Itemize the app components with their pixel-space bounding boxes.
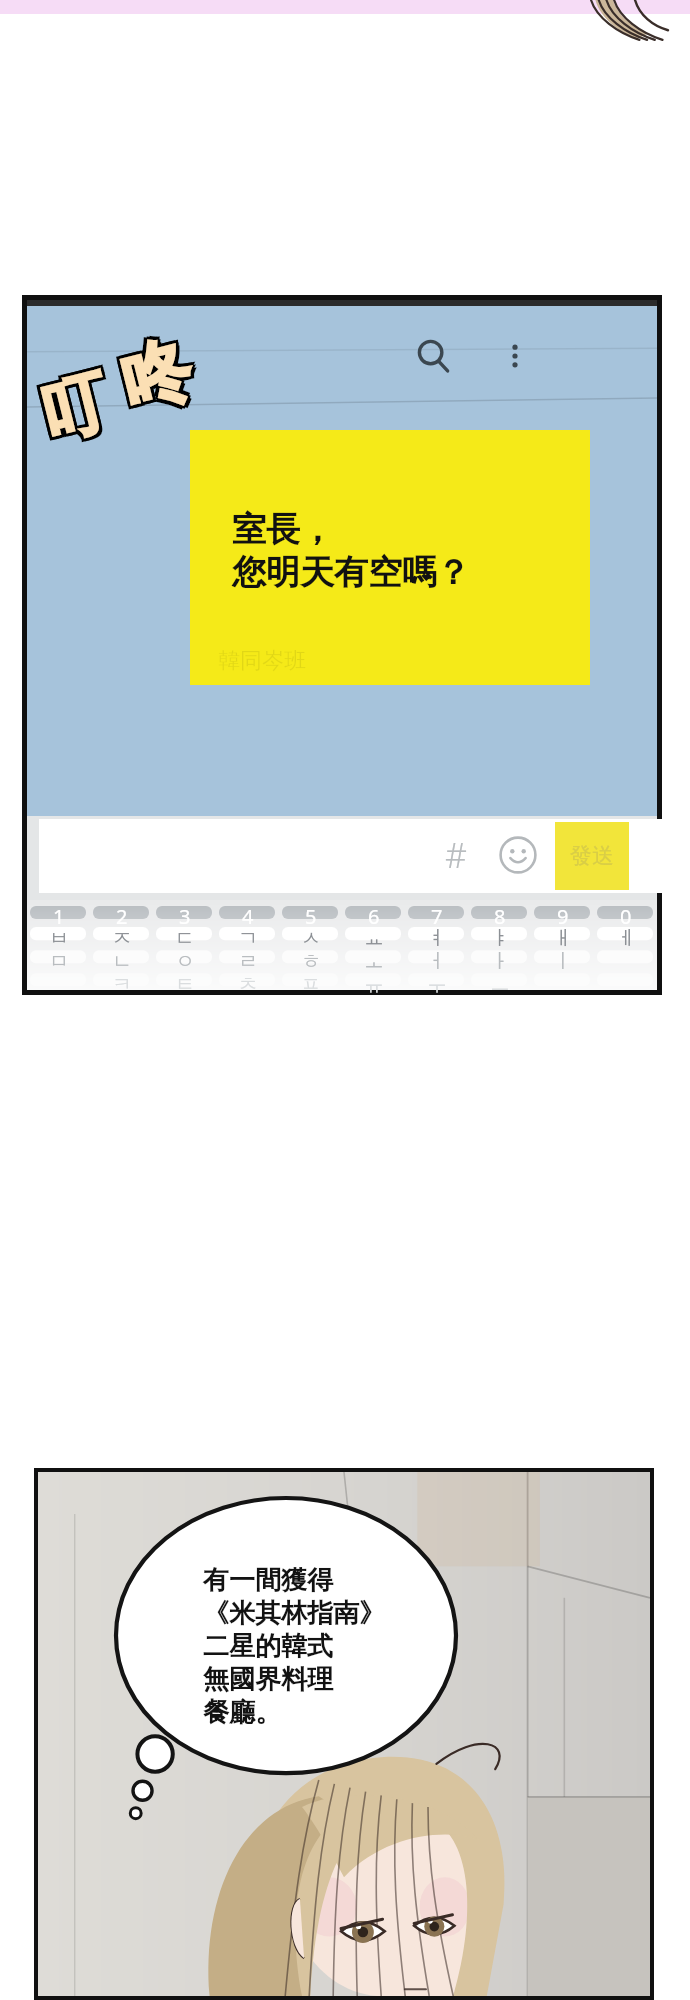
staticText: 咚: [109, 328, 198, 431]
staticText: 叮: [28, 357, 112, 454]
staticText: ㅑ: [490, 926, 510, 949]
button[interactable]: [39, 819, 669, 893]
staticText: 2: [116, 903, 128, 926]
button[interactable]: ㅂ: [27, 926, 90, 949]
button[interactable]: ㅓ: [405, 949, 468, 972]
staticText: 3: [179, 903, 191, 926]
staticText: ㄷ: [175, 926, 195, 949]
staticText: ㅁ: [49, 949, 69, 972]
button[interactable]: 5: [279, 903, 342, 926]
staticText: ㅗ: [364, 949, 384, 972]
staticText: ㅔ: [616, 926, 636, 949]
button[interactable]: ㅌ: [153, 972, 216, 995]
button[interactable]: 7: [405, 903, 468, 926]
button[interactable]: ㅛ: [342, 926, 405, 949]
staticText: 叮: [30, 363, 114, 459]
staticText: ㅕ: [427, 926, 447, 949]
staticText: ㅐ: [553, 926, 573, 949]
button[interactable]: ㅎ: [279, 949, 342, 972]
staticText: #: [445, 832, 467, 878]
button[interactable]: ㅊ: [216, 972, 279, 995]
staticText: 韓同岑班: [218, 647, 306, 675]
staticText: 咚: [114, 321, 203, 423]
staticText: 7: [431, 903, 443, 926]
button[interactable]: 發送: [555, 822, 629, 890]
button[interactable]: ㄱ: [216, 926, 279, 949]
staticText: ㅊ: [238, 972, 258, 995]
staticText: 您明天有空嗎？: [232, 551, 470, 594]
button[interactable]: 室長，: [190, 430, 590, 685]
button[interactable]: ㅈ: [90, 926, 153, 949]
button[interactable]: ㅐ: [531, 926, 594, 949]
staticText: 餐廳。: [203, 1696, 281, 1729]
staticText: 《米其林指南》: [203, 1597, 385, 1630]
button[interactable]: 2: [90, 903, 153, 926]
staticText: 叮: [31, 356, 115, 453]
staticText: 8: [494, 903, 506, 926]
button[interactable]: ㅡ: [468, 972, 531, 995]
staticText: 有一間獲得: [203, 1564, 333, 1597]
button[interactable]: ㅜ: [405, 972, 468, 995]
staticText: ㄴ: [112, 949, 132, 972]
staticText: ㅌ: [175, 972, 195, 995]
staticText: ㅈ: [112, 926, 132, 949]
button[interactable]: ㅕ: [405, 926, 468, 949]
button[interactable]: ㅠ: [342, 972, 405, 995]
button[interactable]: ㄹ: [216, 949, 279, 972]
button[interactable]: Emoji: [489, 826, 547, 884]
staticText: ㅎ: [301, 949, 321, 972]
button[interactable]: Hashtag: [427, 826, 485, 884]
button[interactable]: ㅔ: [594, 926, 657, 949]
staticText: 叮: [34, 356, 118, 452]
staticText: 咚: [111, 322, 200, 424]
staticText: 6: [368, 903, 380, 926]
button[interactable]: ㅋ: [90, 972, 153, 995]
staticText: 4: [242, 903, 254, 926]
button[interactable]: ㄷ: [153, 926, 216, 949]
staticText: 叮: [35, 358, 119, 455]
staticText: 9: [557, 903, 569, 926]
button[interactable]: 8: [468, 903, 531, 926]
staticText: 無國界料理: [203, 1663, 333, 1696]
staticText: 咚: [114, 324, 203, 426]
button[interactable]: 9: [531, 903, 594, 926]
staticText: ㅡ: [490, 972, 510, 995]
staticText: 咚: [111, 325, 201, 427]
staticText: ㅇ: [175, 949, 195, 972]
button[interactable]: ㅅ: [279, 926, 342, 949]
staticText: ㅜ: [427, 972, 447, 995]
staticText: 咚: [115, 327, 204, 429]
staticText: ㅅ: [301, 926, 321, 949]
staticText: 室長，: [232, 508, 334, 551]
button[interactable]: 3: [153, 903, 216, 926]
button[interactable]: ㅣ: [531, 949, 594, 972]
button[interactable]: Search: [405, 328, 461, 384]
button[interactable]: ㅍ: [279, 972, 342, 995]
staticText: ㄹ: [238, 949, 258, 972]
staticText: 5: [305, 903, 317, 926]
button[interactable]: ㅏ: [468, 949, 531, 972]
staticText: 發送: [570, 842, 614, 870]
button[interactable]: 6: [342, 903, 405, 926]
staticText: ㅏ: [490, 949, 510, 972]
button[interactable]: 4: [216, 903, 279, 926]
staticText: ㄱ: [238, 926, 258, 949]
button[interactable]: ㅁ: [27, 949, 90, 972]
staticText: 1: [53, 903, 65, 926]
staticText: ㅍ: [301, 972, 321, 995]
button[interactable]: ㄴ: [90, 949, 153, 972]
button[interactable]: ㅗ: [342, 949, 405, 972]
staticText: 咚: [112, 328, 201, 430]
button[interactable]: More options: [487, 328, 543, 384]
staticText: ㅂ: [49, 926, 69, 949]
button[interactable]: ㅑ: [468, 926, 531, 949]
button[interactable]: 1: [27, 903, 90, 926]
staticText: ㅓ: [427, 949, 447, 972]
button[interactable]: 0: [594, 903, 657, 926]
staticText: ㅠ: [364, 972, 384, 995]
button[interactable]: ㅇ: [153, 949, 216, 972]
staticText: 叮: [29, 360, 113, 456]
staticText: 0: [620, 903, 632, 926]
staticText: ㅛ: [364, 926, 384, 949]
staticText: ㅣ: [553, 949, 573, 972]
